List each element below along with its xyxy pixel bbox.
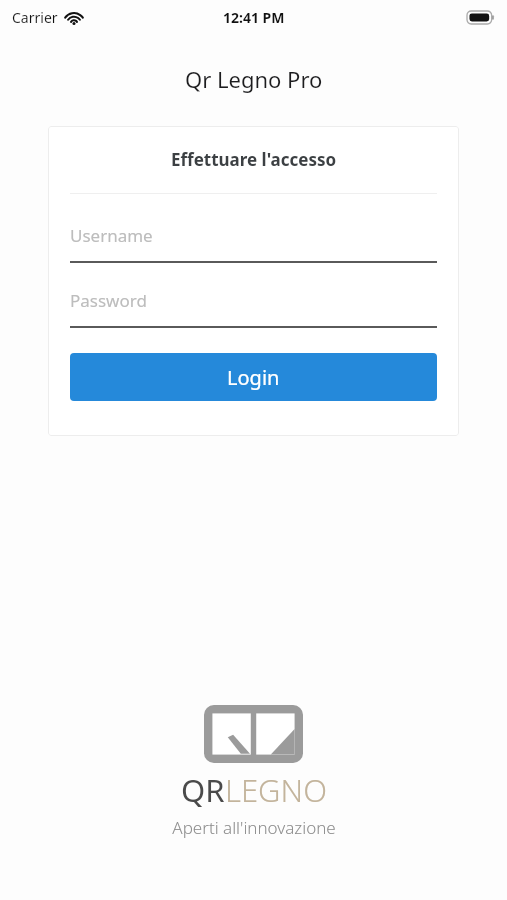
staticText: Effettuare l'accesso: [171, 148, 337, 171]
button[interactable]: Login: [70, 353, 437, 401]
staticText: 12:41 PM: [223, 8, 285, 27]
staticText: Qr Legno Pro: [185, 64, 323, 94]
button[interactable]: Password: [70, 287, 437, 328]
staticText: Login: [227, 364, 280, 391]
staticText: LEGNO: [225, 769, 327, 811]
staticText: QR: [181, 769, 225, 811]
staticText: Password: [70, 289, 147, 312]
button[interactable]: Username: [70, 222, 437, 263]
staticText: Aperti all'innovazione: [172, 816, 336, 839]
staticText: Username: [70, 224, 153, 247]
staticText: Carrier: [12, 8, 58, 27]
